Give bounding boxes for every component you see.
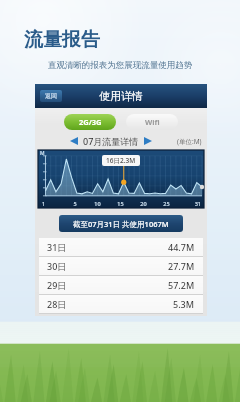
staticText: 44.7M [168, 241, 195, 253]
button[interactable]: 29日 [39, 276, 203, 294]
staticText: 5 [64, 200, 86, 207]
staticText: 10 [86, 200, 109, 207]
button[interactable]: Previous month [68, 135, 80, 147]
staticText: 20 [132, 200, 155, 207]
staticText: 27.7M [168, 260, 195, 272]
staticText: 5.3M [173, 298, 195, 310]
staticText: 返回 [45, 92, 57, 100]
staticText: 流量报告 [24, 28, 100, 52]
staticText: 57.2M [168, 279, 195, 291]
staticText: 1 [42, 200, 64, 207]
button[interactable]: 28日 [39, 295, 203, 313]
staticText: 16日2.3M [106, 156, 136, 165]
staticText: 29日 [47, 279, 67, 291]
staticText: 07月流量详情 [83, 135, 139, 147]
staticText: 使用详情 [99, 89, 143, 103]
button[interactable]: 30日 [39, 257, 203, 275]
staticText: (单位:M) [177, 137, 202, 146]
staticText: 15 [109, 200, 132, 207]
button[interactable]: Next month [142, 135, 154, 147]
button[interactable]: Wifi [126, 114, 178, 130]
staticText: Wifi [145, 117, 160, 127]
button[interactable]: 截至07月31日 共使用1067M [59, 215, 183, 232]
staticText: 31 [178, 200, 201, 207]
button[interactable]: 31日 [39, 238, 203, 256]
staticText: 28日 [47, 298, 67, 310]
staticText: 直观清晰的报表为您展现流量使用趋势 [20, 60, 220, 71]
staticText: 截至07月31日 共使用1067M [73, 219, 169, 229]
button[interactable]: 2G/3G [64, 114, 116, 130]
staticText: 30日 [47, 260, 67, 272]
staticText: M [40, 150, 45, 157]
staticText: 25 [155, 200, 178, 207]
staticText: 31日 [47, 241, 67, 253]
button[interactable]: 16日2.3M [102, 155, 140, 166]
button[interactable]: 返回 [40, 90, 62, 102]
staticText: 2G/3G [79, 117, 102, 127]
